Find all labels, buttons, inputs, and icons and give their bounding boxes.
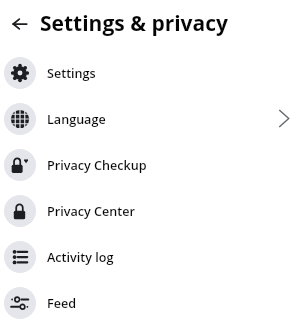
- staticText: Feed: [47, 295, 77, 312]
- button[interactable]: Feed: [0, 280, 300, 326]
- staticText: Settings & privacy: [40, 9, 228, 38]
- staticText: Language: [47, 111, 106, 128]
- button[interactable]: Privacy Checkup: [0, 142, 300, 188]
- button[interactable]: Settings: [0, 50, 300, 96]
- button[interactable]: Privacy Center: [0, 188, 300, 234]
- staticText: Activity log: [47, 249, 114, 266]
- staticText: Privacy Checkup: [47, 157, 147, 174]
- button[interactable]: Back: [0, 0, 40, 47]
- button[interactable]: Language: [0, 96, 300, 142]
- button[interactable]: Activity log: [0, 234, 300, 280]
- staticText: Settings: [47, 65, 96, 82]
- staticText: Privacy Center: [47, 203, 135, 220]
